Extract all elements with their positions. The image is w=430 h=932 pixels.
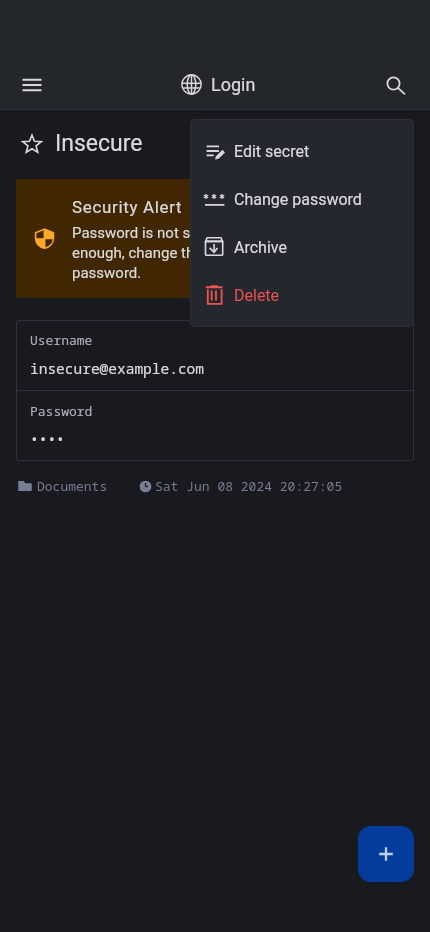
staticText: Documents (37, 477, 108, 495)
staticText: Password (30, 402, 93, 420)
button[interactable]: Add new item (358, 826, 414, 882)
button[interactable]: Username (16, 320, 414, 390)
button[interactable]: Open navigation menu (8, 61, 56, 109)
staticText: Delete (234, 286, 280, 305)
staticText: Insecure (55, 130, 143, 157)
staticText: Security Alert (72, 197, 183, 217)
staticText: •••• (30, 429, 65, 449)
staticText: Password is not strong enough, change th… (72, 224, 244, 281)
staticText: Sat Jun 08 2024 20:27:05 (155, 477, 343, 495)
staticText: Edit secret (234, 142, 310, 161)
staticText: Change password (234, 190, 362, 209)
button[interactable]: Change password (190, 175, 414, 223)
button[interactable]: Edit secret (190, 127, 414, 175)
staticText: Login (211, 74, 256, 95)
staticText: Archive (234, 238, 287, 257)
button[interactable]: Password (16, 391, 414, 461)
button[interactable]: Delete (190, 271, 414, 319)
button[interactable]: Search (374, 61, 422, 109)
button[interactable]: Archive (190, 223, 414, 271)
staticText: insecure@example.com (30, 358, 204, 378)
button[interactable]: Security Alert (16, 179, 414, 298)
staticText: Username (30, 331, 93, 349)
